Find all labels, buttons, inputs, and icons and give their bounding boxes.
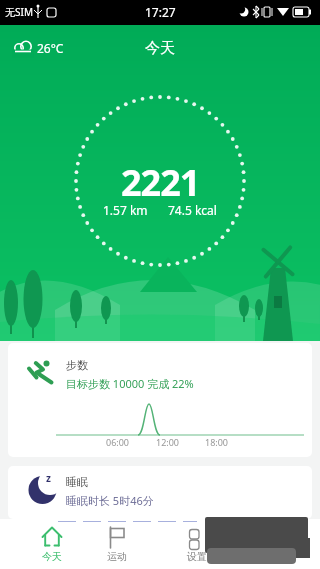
staticText: 睡眠时长 5时46分 bbox=[66, 493, 154, 508]
staticText: 设置 bbox=[187, 550, 207, 563]
staticText: 2221 bbox=[121, 158, 200, 207]
staticText: 今天 bbox=[145, 39, 175, 58]
staticText: 1.57 km bbox=[103, 202, 148, 218]
button[interactable]: 运动 bbox=[85, 519, 149, 569]
staticText: 步数 bbox=[66, 358, 88, 372]
staticText: 74.5 kcal bbox=[168, 202, 217, 218]
staticText: 06:00 bbox=[106, 436, 130, 448]
button[interactable] bbox=[8, 343, 312, 457]
button[interactable]: 设置 bbox=[165, 519, 229, 569]
staticText: 12:00 bbox=[156, 436, 180, 448]
staticText: 今天 bbox=[42, 550, 62, 563]
staticText: 睡眠 bbox=[66, 475, 88, 489]
staticText: 目标步数 10000 完成 22% bbox=[66, 376, 194, 391]
staticText: 运动 bbox=[107, 550, 127, 563]
staticText: 17:27 bbox=[145, 4, 176, 20]
button[interactable]: 今天 bbox=[20, 519, 84, 569]
staticText: 26°C bbox=[37, 40, 64, 56]
staticText: 18:00 bbox=[205, 436, 229, 448]
staticText: z bbox=[46, 471, 51, 485]
staticText: 无SIM bbox=[5, 5, 33, 19]
button[interactable] bbox=[8, 466, 312, 519]
